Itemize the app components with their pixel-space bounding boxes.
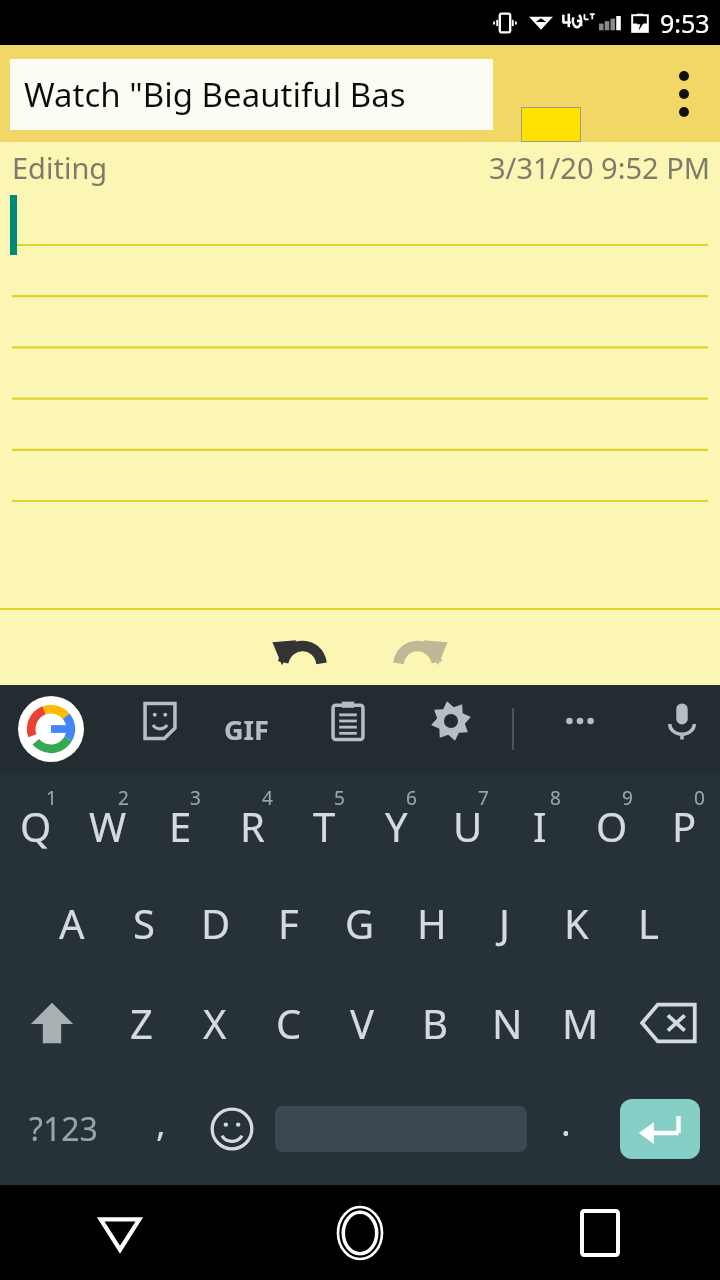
- button[interactable]: A: [36, 873, 108, 973]
- button[interactable]: 1: [0, 773, 72, 873]
- staticText: S: [133, 896, 155, 950]
- button[interactable]: Shift: [0, 973, 104, 1073]
- button[interactable]: F: [252, 873, 324, 973]
- button[interactable]: G: [324, 873, 396, 973]
- staticText: A: [59, 896, 85, 950]
- staticText: P: [672, 799, 697, 853]
- button[interactable]: Redo: [360, 610, 480, 685]
- staticText: C: [276, 996, 302, 1050]
- staticText: ,: [156, 1098, 166, 1147]
- staticText: B: [422, 996, 448, 1050]
- staticText: E: [169, 799, 192, 853]
- button[interactable]: More options: [648, 45, 720, 142]
- staticText: M: [562, 996, 599, 1050]
- button[interactable]: Back: [0, 1185, 240, 1280]
- staticText: O: [596, 799, 628, 853]
- staticText: 3: [190, 785, 201, 811]
- staticText: G: [345, 896, 375, 950]
- button[interactable]: Enter: [600, 1073, 720, 1185]
- staticText: 5: [334, 785, 345, 811]
- button[interactable]: [0, 192, 720, 608]
- button[interactable]: L: [612, 873, 684, 973]
- button[interactable]: X: [178, 973, 252, 1073]
- button[interactable]: ?123: [0, 1073, 127, 1185]
- staticText: U: [453, 799, 483, 853]
- button[interactable]: 2: [72, 773, 144, 873]
- staticText: .: [561, 1098, 571, 1147]
- staticText: X: [203, 996, 227, 1050]
- staticText: Y: [385, 799, 408, 853]
- staticText: 9:53: [660, 6, 710, 40]
- staticText: 4: [262, 785, 273, 811]
- staticText: Editing: [12, 148, 108, 187]
- button[interactable]: 7: [432, 773, 504, 873]
- button[interactable]: Home: [240, 1185, 480, 1280]
- button[interactable]: S: [108, 873, 180, 973]
- staticText: V: [350, 996, 374, 1050]
- button[interactable]: 9: [576, 773, 648, 873]
- staticText: 0: [694, 785, 705, 811]
- button[interactable]: C: [252, 973, 325, 1073]
- staticText: Watch "Big Beautiful Bas: [24, 72, 406, 117]
- staticText: ?123: [29, 1107, 98, 1151]
- staticText: T: [313, 799, 336, 853]
- button[interactable]: 8: [504, 773, 576, 873]
- button[interactable]: 5: [288, 773, 360, 873]
- staticText: 8: [550, 785, 561, 811]
- staticText: R: [240, 799, 265, 853]
- button[interactable]: Clipboard: [312, 685, 384, 757]
- button[interactable]: Undo: [240, 610, 360, 685]
- staticText: I: [533, 799, 547, 853]
- staticText: 3/31/20 9:52 PM: [489, 148, 710, 187]
- button[interactable]: N: [471, 973, 544, 1073]
- staticText: K: [564, 896, 589, 950]
- button[interactable]: B: [398, 973, 471, 1073]
- staticText: F: [278, 896, 299, 950]
- button[interactable]: GIF: [210, 693, 282, 765]
- button[interactable]: Voice input: [646, 685, 718, 757]
- button[interactable]: 4: [216, 773, 288, 873]
- button[interactable]: Recents: [480, 1185, 720, 1280]
- button[interactable]: J: [468, 873, 540, 973]
- staticText: N: [492, 996, 523, 1050]
- staticText: 7: [478, 785, 489, 811]
- button[interactable]: More: [544, 685, 616, 757]
- button[interactable]: D: [180, 873, 252, 973]
- button[interactable]: 0: [648, 773, 720, 873]
- button[interactable]: Note colour: [521, 107, 581, 142]
- button[interactable]: Space: [269, 1073, 532, 1185]
- staticText: W: [89, 799, 127, 853]
- button[interactable]: ,: [127, 1073, 194, 1185]
- button[interactable]: Settings: [415, 685, 487, 757]
- staticText: 2: [118, 785, 129, 811]
- button[interactable]: Backspace: [617, 973, 720, 1073]
- button[interactable]: Google search: [18, 696, 84, 762]
- button[interactable]: 6: [360, 773, 432, 873]
- button[interactable]: V: [325, 973, 398, 1073]
- staticText: H: [417, 896, 447, 950]
- staticText: D: [201, 896, 231, 950]
- staticText: L: [638, 896, 659, 950]
- button[interactable]: Watch "Big Beautiful Bas: [10, 59, 493, 130]
- button[interactable]: Z: [104, 973, 178, 1073]
- staticText: 9: [622, 785, 633, 811]
- staticText: GIF: [224, 711, 269, 748]
- staticText: Q: [20, 799, 52, 853]
- button[interactable]: 3: [144, 773, 216, 873]
- button[interactable]: K: [540, 873, 612, 973]
- button[interactable]: H: [396, 873, 468, 973]
- button[interactable]: M: [544, 973, 617, 1073]
- staticText: J: [499, 896, 510, 950]
- staticText: Z: [130, 996, 153, 1050]
- button[interactable]: Emoji: [194, 1073, 269, 1185]
- staticText: 1: [46, 785, 57, 811]
- staticText: 6: [406, 785, 417, 811]
- button[interactable]: Stickers: [124, 685, 196, 757]
- button[interactable]: .: [532, 1073, 600, 1185]
